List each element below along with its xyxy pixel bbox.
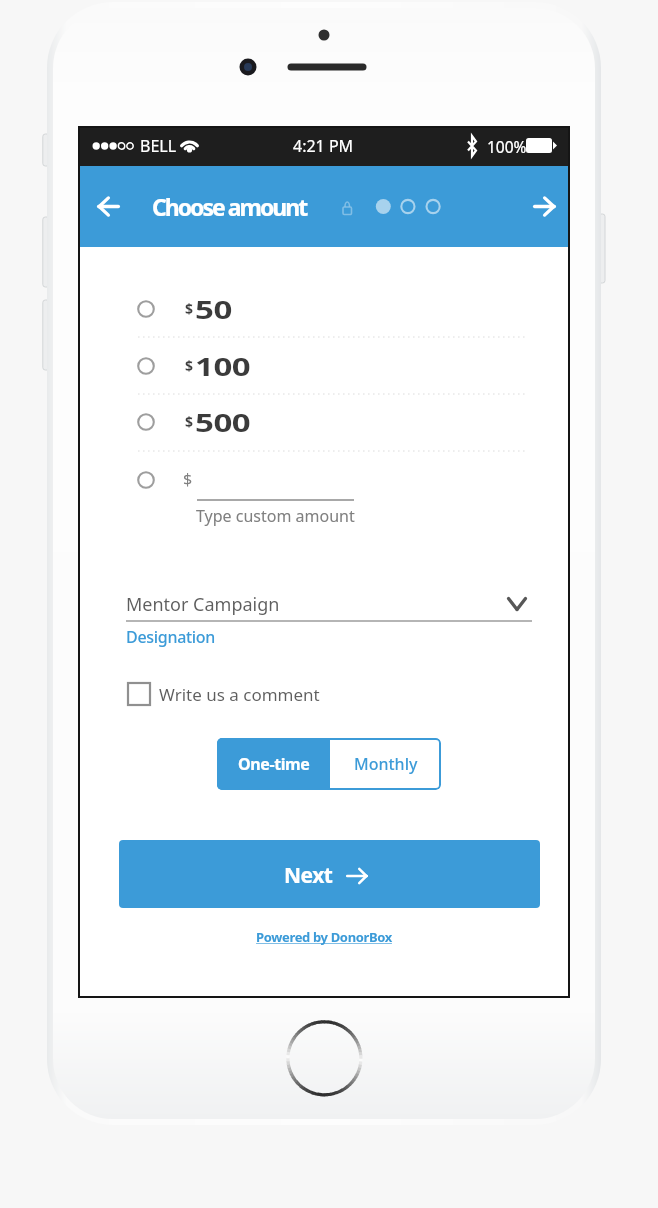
button[interactable]: Monthly (330, 738, 441, 790)
staticText: $ (183, 468, 193, 490)
staticText: 4:21 PM (293, 135, 354, 157)
staticText: 50 (195, 292, 232, 327)
button[interactable]: $ (78, 286, 570, 334)
button[interactable]: $ (78, 399, 570, 447)
staticText: Monthly (354, 753, 418, 775)
staticText: 100% (487, 136, 527, 157)
staticText: 500 (195, 405, 251, 440)
button[interactable]: $ (78, 456, 570, 528)
button[interactable]: Back (88, 186, 128, 226)
staticText: $ (185, 299, 194, 318)
staticText: Choose amount (152, 191, 307, 222)
staticText: $ (185, 412, 194, 431)
staticText: 100 (195, 349, 251, 384)
staticText: Next (284, 861, 333, 890)
button[interactable]: Write us a comment (128, 677, 320, 711)
staticText: BELL (140, 135, 177, 157)
staticText: Write us a comment (159, 683, 320, 706)
button[interactable]: Powered by DonorBox (256, 928, 392, 946)
staticText: Type custom amount (196, 505, 355, 527)
staticText: One-time (238, 753, 310, 775)
button[interactable]: Next step (524, 186, 564, 226)
staticText: Mentor Campaign (126, 592, 280, 617)
button[interactable]: One-time (217, 738, 330, 790)
button[interactable]: $ (78, 343, 570, 391)
staticText: $ (185, 356, 194, 375)
button[interactable]: Designation (126, 626, 216, 648)
button[interactable]: Mentor Campaign (126, 588, 527, 620)
button[interactable]: Next (119, 840, 540, 908)
